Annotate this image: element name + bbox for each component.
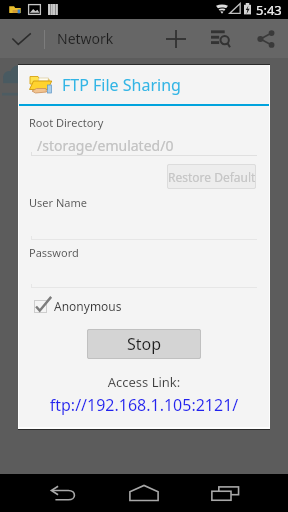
staticText: 5:43 <box>256 1 282 19</box>
staticText: User Name <box>29 195 87 210</box>
button[interactable]: Back <box>26 474 102 512</box>
button[interactable]: Restore Default <box>167 164 256 189</box>
button[interactable]: Search <box>198 19 242 58</box>
staticText: Network <box>57 29 114 48</box>
staticText: Restore Default <box>168 169 256 185</box>
button[interactable]: Network <box>57 19 114 58</box>
staticText: Root Directory <box>29 115 104 130</box>
staticText: /storage/emulated/0 <box>37 136 174 155</box>
staticText: FTP File Sharing <box>62 74 181 96</box>
staticText: Access Link: <box>19 373 269 391</box>
button[interactable]: Done <box>0 19 44 58</box>
staticText: Anonymous <box>54 298 122 314</box>
button[interactable]: Stop <box>87 329 201 359</box>
staticText: ftp://192.168.1.105:2121/ <box>19 394 269 416</box>
staticText: Password <box>29 245 79 260</box>
staticText: Stop <box>127 333 162 355</box>
button[interactable]: ftp://192.168.1.105:2121/ <box>19 394 269 416</box>
button[interactable]: Add <box>154 19 198 58</box>
button[interactable]: Anonymous <box>34 298 122 314</box>
button[interactable]: Home <box>105 474 183 512</box>
button[interactable]: Recents <box>188 474 264 512</box>
button[interactable]: Share <box>244 19 288 58</box>
